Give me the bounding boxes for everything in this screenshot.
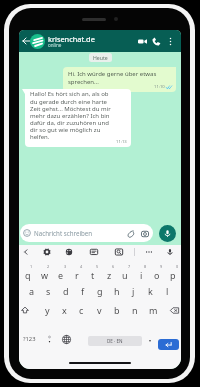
staticText: k [148,285,153,297]
button[interactable]: Comma [43,331,55,347]
button[interactable]: More options [163,34,177,48]
staticText: p [170,269,176,281]
staticText: krisenchat.de [48,34,95,44]
button[interactable]: Camera [139,228,150,239]
button[interactable]: Search [112,245,126,259]
button[interactable]: Voice call [149,34,163,48]
button[interactable]: Contact photo [30,34,45,49]
button[interactable]: 5 [85,263,101,281]
staticText: t [91,269,95,281]
button[interactable]: 7 [117,263,133,281]
staticText: 4 [80,264,83,269]
staticText: i [140,269,143,281]
button[interactable]: Change language [60,331,72,347]
staticText: z [107,269,112,281]
button[interactable]: f [74,282,91,300]
button[interactable]: l [159,282,176,300]
staticText: s [46,285,51,297]
staticText: q [25,269,31,281]
button[interactable]: Nachricht schreiben [20,224,153,242]
button[interactable]: Heute [89,53,112,62]
staticText: 11:13 [116,139,127,145]
button[interactable]: j [125,282,142,300]
staticText: b [114,304,120,316]
staticText: 5 [96,264,99,269]
button[interactable]: DE · EN [88,336,142,346]
button[interactable]: v [90,301,108,319]
staticText: Heute [93,54,108,61]
staticText: f [81,285,85,297]
button[interactable]: 0 [165,263,181,281]
button[interactable]: Back [19,34,32,47]
button[interactable]: 1 [19,263,36,281]
button[interactable]: Themes [62,245,76,259]
staticText: DE · EN [107,338,123,344]
button[interactable]: Enter [158,339,179,350]
button[interactable]: 3 [53,263,69,281]
button[interactable]: Record voice message [159,225,176,242]
button[interactable]: c [73,301,90,319]
staticText: y [45,304,50,316]
button[interactable]: s [40,282,57,300]
button[interactable]: Backspace [162,301,181,319]
button[interactable]: Clipboard [87,245,101,259]
staticText: online [48,42,62,48]
staticText: 1 [30,264,33,269]
button[interactable]: Attach [125,228,136,239]
staticText: d [63,285,69,297]
staticText: Hi. Ich würde gerne über etwas sprechen.… [68,70,172,85]
staticText: r [75,269,79,281]
button[interactable]: h [108,282,125,300]
staticText: x [62,304,67,316]
staticText: u [122,269,128,281]
staticText: w [41,269,49,281]
staticText: c [79,304,84,316]
button[interactable]: More [142,245,156,259]
staticText: o [154,269,160,281]
button[interactable]: 9 [149,263,165,281]
button[interactable]: 6 [101,263,117,281]
button[interactable]: b [108,301,126,319]
staticText: g [97,285,103,297]
button[interactable]: g [91,282,108,300]
staticText: 11:10 [154,84,165,90]
button[interactable]: ?123 [20,331,38,347]
staticText: n [132,304,138,316]
button[interactable]: 8 [133,263,149,281]
button[interactable]: Keyboard settings [40,245,54,259]
button[interactable]: d [57,282,74,300]
button[interactable]: Video call [135,34,149,48]
staticText: m [149,304,158,316]
staticText: e [58,269,64,281]
staticText: Nachricht schreiben [34,229,93,237]
button[interactable]: y [39,301,56,319]
staticText: 0 [176,264,179,269]
staticText: 9 [160,264,163,269]
button[interactable]: 4 [69,263,85,281]
staticText: 7 [128,264,131,269]
button[interactable]: m [144,301,162,319]
button[interactable]: x [56,301,73,319]
staticText: Hallo! Es hört sich an, als ob du gerade… [30,90,112,140]
staticText: a [29,285,35,297]
staticText: v [97,304,102,316]
button[interactable]: Shift [19,301,39,319]
staticText: 2 [47,264,50,269]
button[interactable]: 2 [36,263,53,281]
button[interactable]: Period [144,331,156,347]
staticText: 3 [64,264,67,269]
staticText: h [114,285,120,297]
staticText: j [132,285,135,297]
button[interactable]: Previous [19,245,33,259]
button[interactable]: Hi. Ich würde gerne über etwas sprechen.… [63,67,176,92]
button[interactable]: Hallo! Es hört sich an, als ob du gerade… [25,89,131,147]
staticText: ?123 [23,335,36,343]
button[interactable]: k [142,282,159,300]
button[interactable]: n [126,301,144,319]
staticText: 8 [144,264,147,269]
button[interactable]: Voice input [163,245,177,259]
staticText: l [166,285,169,297]
button[interactable]: a [23,282,40,300]
staticText: 6 [112,264,115,269]
